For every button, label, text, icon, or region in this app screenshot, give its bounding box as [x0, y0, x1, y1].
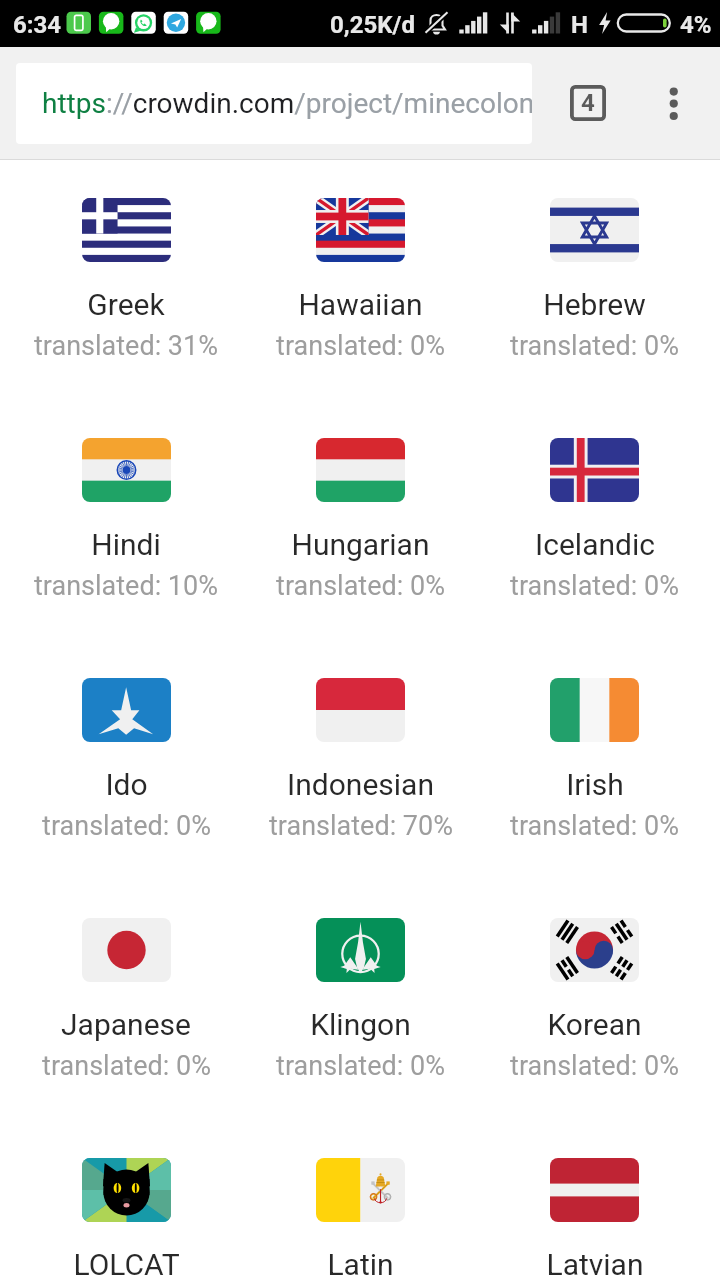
staticText: 0,25K/d [330, 11, 415, 39]
button[interactable]: Latvian [469, 1120, 720, 1280]
staticText: translated: 0% [42, 1050, 211, 1082]
staticText: Klingon [310, 1007, 411, 1042]
staticText: https://crowdin.com/project/minecolonies [42, 87, 532, 120]
staticText: translated: 0% [510, 810, 679, 842]
staticText: Latin [327, 1247, 394, 1280]
staticText: Hawaiian [298, 287, 423, 322]
staticText: 4% [680, 11, 712, 39]
button[interactable]: Tabs [554, 69, 622, 137]
button[interactable]: Irish [469, 640, 720, 880]
staticText: Ido [105, 767, 148, 802]
button[interactable]: Japanese [0, 880, 252, 1120]
staticText: translated: 10% [34, 570, 218, 602]
staticText: Greek [87, 287, 165, 322]
staticText: Indonesian [287, 767, 434, 802]
button[interactable]: Greek [0, 160, 252, 400]
staticText: Korean [547, 1007, 642, 1042]
button[interactable]: Hawaiian [252, 160, 469, 400]
staticText: H [571, 11, 588, 39]
staticText: Irish [566, 767, 624, 802]
staticText: translated: 0% [276, 570, 445, 602]
staticText: translated: 0% [510, 330, 679, 362]
button[interactable]: https://crowdin.com/project/minecolonies [16, 63, 532, 144]
staticText: LOLCAT [73, 1247, 180, 1280]
staticText: Icelandic [535, 527, 655, 562]
button[interactable]: Klingon [252, 880, 469, 1120]
button[interactable]: More options [640, 69, 708, 137]
staticText: translated: 0% [510, 570, 679, 602]
staticText: 6:34 [13, 11, 62, 39]
staticText: translated: 0% [276, 330, 445, 362]
staticText: Hungarian [291, 527, 430, 562]
button[interactable]: Korean [469, 880, 720, 1120]
staticText: translated: 0% [42, 810, 211, 842]
staticText: Hebrew [543, 287, 646, 322]
button[interactable]: Ido [0, 640, 252, 880]
staticText: translated: 31% [34, 330, 218, 362]
button[interactable]: Hebrew [469, 160, 720, 400]
button[interactable]: Latin [252, 1120, 469, 1280]
staticText: 4 [581, 89, 595, 117]
button[interactable]: LOLCAT [0, 1120, 252, 1280]
staticText: translated: 0% [510, 1050, 679, 1082]
staticText: Japanese [61, 1007, 191, 1042]
staticText: translated: 70% [269, 810, 453, 842]
button[interactable]: Indonesian [252, 640, 469, 880]
staticText: Latvian [546, 1247, 644, 1280]
staticText: Hindi [91, 527, 161, 562]
button[interactable]: Hungarian [252, 400, 469, 640]
button[interactable]: Hindi [0, 400, 252, 640]
staticText: translated: 0% [276, 1050, 445, 1082]
button[interactable]: Icelandic [469, 400, 720, 640]
